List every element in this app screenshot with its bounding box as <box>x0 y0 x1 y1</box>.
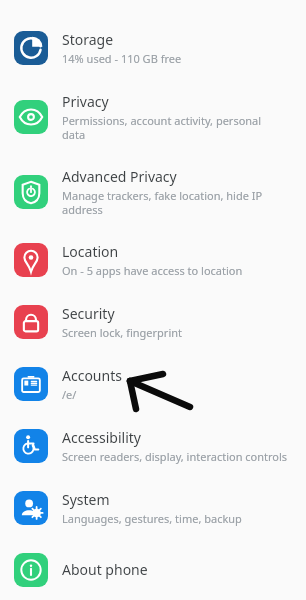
staticText: Permissions, account activity, personal … <box>62 113 262 142</box>
staticText: Privacy <box>62 92 109 111</box>
staticText: Advanced Privacy <box>62 167 177 186</box>
staticText: 14% used - 110 GB free <box>62 51 182 66</box>
button[interactable]: Accessibility <box>0 415 306 477</box>
button[interactable]: Storage <box>0 17 306 79</box>
staticText: Screen lock, fingerprint <box>62 325 183 340</box>
staticText: Security <box>62 304 115 323</box>
button[interactable]: About phone <box>0 539 306 600</box>
staticText: Location <box>62 242 119 261</box>
staticText: Manage trackers, fake location, hide IP … <box>62 188 263 217</box>
staticText: About phone <box>62 560 148 579</box>
staticText: On - 5 apps have access to location <box>62 263 243 278</box>
staticText: Storage <box>62 30 114 49</box>
staticText: System <box>62 490 110 509</box>
button[interactable]: Location <box>0 229 306 291</box>
staticText: Screen readers, display, interaction con… <box>62 449 288 464</box>
staticText: Accounts <box>62 366 122 385</box>
button[interactable]: Security <box>0 291 306 353</box>
button[interactable]: Accounts <box>0 353 306 415</box>
button[interactable]: System <box>0 477 306 539</box>
button[interactable]: Advanced Privacy <box>0 154 306 229</box>
staticText: /e/ <box>62 387 77 402</box>
button[interactable]: Privacy <box>0 79 306 154</box>
staticText: Languages, gestures, time, backup <box>62 511 242 526</box>
staticText: Accessibility <box>62 428 141 447</box>
